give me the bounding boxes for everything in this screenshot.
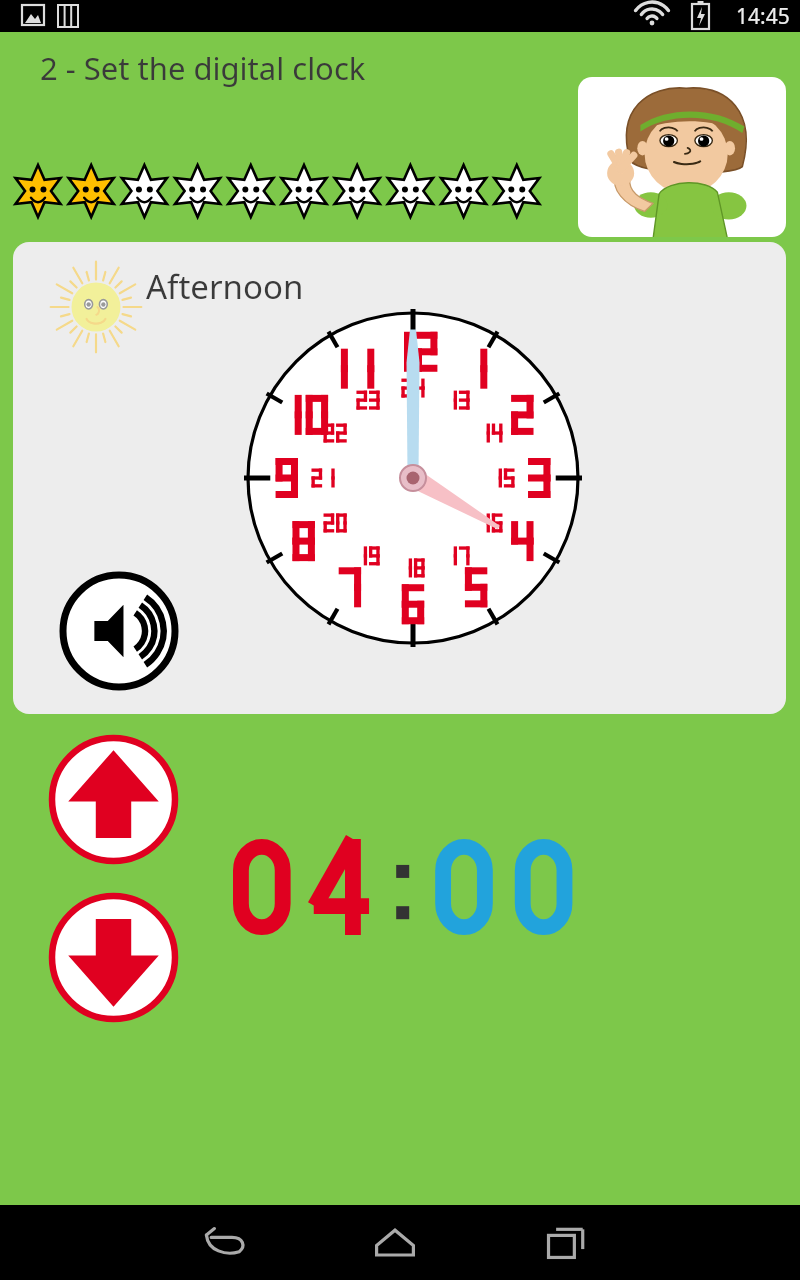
button[interactable]: Back bbox=[185, 1205, 263, 1280]
staticText: 2 - Set the digital clock bbox=[40, 47, 366, 89]
button[interactable]: Play sound bbox=[58, 570, 180, 692]
staticText: Afternoon bbox=[146, 264, 304, 309]
button[interactable]: Recent apps bbox=[527, 1205, 605, 1280]
button[interactable]: Increase hour bbox=[48, 734, 179, 865]
button[interactable]: Home bbox=[356, 1205, 434, 1280]
staticText: 14:45 bbox=[736, 2, 790, 31]
button[interactable]: Decrease hour bbox=[48, 892, 179, 1023]
button[interactable]: Character bbox=[578, 77, 786, 237]
